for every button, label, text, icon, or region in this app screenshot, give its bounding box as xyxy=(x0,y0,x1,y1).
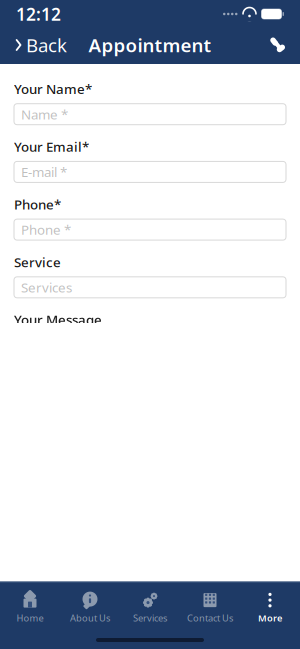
staticText: Services xyxy=(21,278,72,296)
button[interactable]: Contact Us xyxy=(180,586,240,630)
staticText: E-mail * xyxy=(21,163,67,181)
button[interactable]: More xyxy=(240,586,300,630)
staticText: Contact Us xyxy=(187,612,233,624)
staticText: Your Email* xyxy=(14,138,89,155)
staticText: Name * xyxy=(21,105,68,123)
staticText: Appointment xyxy=(88,33,211,57)
staticText: About Us xyxy=(70,612,110,624)
staticText: Service xyxy=(14,253,61,271)
button[interactable]: Phone * xyxy=(14,219,286,240)
button[interactable]: About Us xyxy=(60,586,120,630)
button[interactable]: Services xyxy=(120,586,180,630)
button[interactable]: Call xyxy=(259,28,296,62)
staticText: More xyxy=(258,612,282,624)
button[interactable]: E-mail * xyxy=(14,161,286,182)
staticText: Your Name* xyxy=(14,80,92,98)
staticText: Phone * xyxy=(21,221,71,238)
button[interactable]: Services xyxy=(14,277,286,298)
button[interactable]: Name * xyxy=(14,104,286,125)
button[interactable]: Home xyxy=(0,586,60,630)
staticText: Your Message xyxy=(14,311,102,328)
staticText: Back xyxy=(26,33,67,57)
staticText: Home xyxy=(16,612,43,624)
staticText: Phone* xyxy=(14,195,61,213)
staticText: 12:12 xyxy=(16,2,61,25)
button[interactable]: Back xyxy=(4,28,77,62)
staticText: Services xyxy=(133,612,167,624)
